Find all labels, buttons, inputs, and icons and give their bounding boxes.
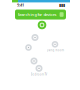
button[interactable]: Printer [17, 44, 39, 51]
button[interactable]: Display [23, 57, 45, 64]
staticText: Searching for devices [18, 12, 57, 17]
staticText: ▮▮▮ [59, 3, 65, 7]
staticText: Living Room [46, 48, 63, 52]
button[interactable]: Speaker [24, 34, 46, 41]
staticText: Bedroom TV [30, 73, 47, 76]
staticText: 9:41 [17, 2, 24, 8]
button[interactable]: This device [38, 21, 46, 29]
button[interactable]: Living Room [44, 41, 66, 52]
button[interactable]: Searching for devices [15, 9, 66, 19]
button[interactable]: Bedroom TV [28, 65, 50, 76]
